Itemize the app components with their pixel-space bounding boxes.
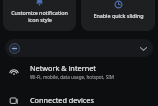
staticText: icon style [28,16,52,23]
other: Expand [138,43,149,54]
button[interactable]: Customize notification [3,0,76,31]
staticText: Customize notification [11,9,68,16]
button[interactable]: Do not disturb [5,39,153,57]
staticText: Network & internet [30,63,96,73]
button[interactable]: Network & internet [0,61,158,82]
staticText: Connected devices [30,95,94,105]
button[interactable]: Enable quick sliding [81,0,155,31]
button[interactable]: Connected devices [0,89,158,106]
staticText: Enable quick sliding [93,12,144,19]
other: Do not disturb [9,43,20,54]
staticText: Wi-Fi, mobile, data usage, hotspot, SIM [30,74,114,80]
